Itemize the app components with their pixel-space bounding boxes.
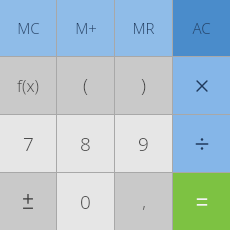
button[interactable]: Divide	[173, 115, 230, 172]
button[interactable]: Plus minus	[0, 173, 56, 230]
button[interactable]: 9	[115, 115, 172, 172]
button[interactable]: Equals	[173, 173, 230, 230]
button[interactable]: (	[57, 57, 114, 114]
staticText: 9	[138, 131, 149, 157]
staticText: 0	[80, 189, 91, 215]
button[interactable]: 0	[57, 173, 114, 230]
button[interactable]: Multiply	[173, 57, 230, 114]
staticText: 8	[80, 131, 91, 157]
button[interactable]: 8	[57, 115, 114, 172]
button[interactable]: MC	[0, 0, 56, 56]
staticText: f(x)	[17, 75, 39, 97]
button[interactable]: )	[115, 57, 172, 114]
staticText: )	[141, 73, 146, 98]
staticText: ,	[142, 191, 146, 213]
button[interactable]: M+	[57, 0, 114, 56]
button[interactable]: AC	[173, 0, 230, 56]
staticText: MC	[17, 18, 40, 38]
button[interactable]: 7	[0, 115, 56, 172]
staticText: 7	[23, 131, 34, 157]
staticText: (	[83, 73, 88, 98]
button[interactable]: MR	[115, 0, 172, 56]
staticText: AC	[192, 18, 211, 38]
button[interactable]: f(x)	[0, 57, 56, 114]
staticText: M+	[75, 18, 97, 38]
staticText: MR	[132, 18, 155, 38]
